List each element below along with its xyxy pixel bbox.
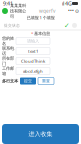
staticText: 请输入: [27, 38, 39, 44]
staticText: 您的姓名: [2, 36, 14, 46]
staticText: wqerfv: [39, 8, 55, 14]
staticText: ✓: [64, 21, 70, 29]
staticText: CloudThink: [21, 58, 45, 64]
staticText: 工作邮箱: [2, 66, 14, 76]
staticText: 9:41: [3, 0, 13, 7]
staticText: abcd.efgh: [23, 68, 43, 74]
staticText: 提交: [24, 78, 32, 83]
staticText: 基本信息: [34, 31, 50, 36]
staticText: text1: [28, 48, 38, 54]
staticText: 重置: [42, 78, 50, 83]
staticText: 某某某科技有限公司: [10, 3, 26, 19]
staticText: 所在部门: [2, 56, 14, 66]
staticText: 已填报 1 个填报: [26, 15, 54, 20]
button[interactable]: 进入收集: [2, 124, 79, 144]
staticText: 联系电话: [2, 46, 14, 56]
staticText: *: [31, 31, 33, 36]
staticText: ıl 4G: [62, 0, 72, 7]
staticText: 进入收集: [28, 130, 52, 138]
staticText: 提交状态: [4, 23, 20, 28]
staticText: ••• ⊙: [68, 8, 79, 14]
staticText: 多行文本: [2, 78, 18, 84]
